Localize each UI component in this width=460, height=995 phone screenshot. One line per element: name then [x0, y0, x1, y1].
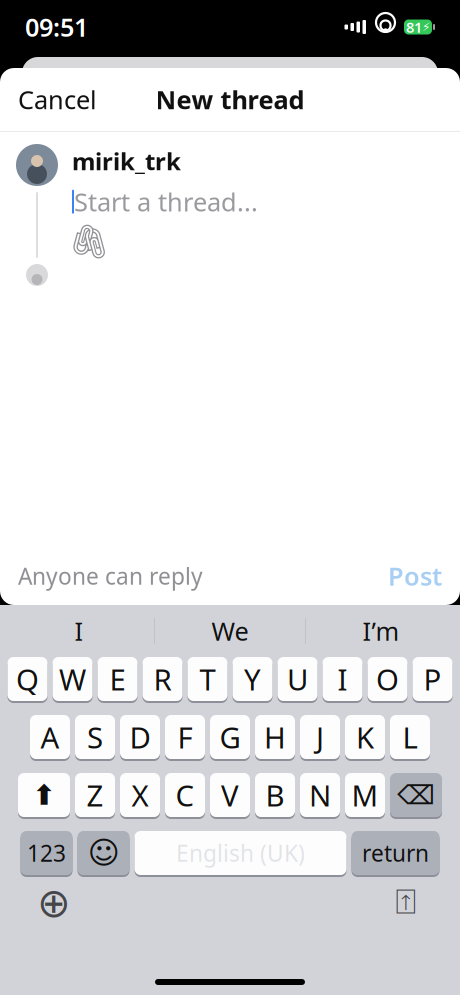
staticText: Y: [244, 659, 261, 698]
button[interactable]: M: [345, 773, 385, 819]
button[interactable]: return: [351, 831, 439, 877]
staticText: L: [402, 717, 417, 756]
staticText: Q: [16, 659, 39, 698]
button[interactable]: Cancel: [0, 73, 115, 126]
button[interactable]: Switch keyboard: [32, 883, 76, 923]
button[interactable]: P: [412, 657, 452, 703]
staticText: I: [74, 614, 83, 648]
staticText: 123: [27, 838, 66, 868]
button[interactable]: Post: [388, 549, 442, 603]
staticText: G: [219, 717, 240, 756]
button[interactable]: R: [142, 657, 182, 703]
staticText: Z: [86, 775, 103, 814]
button[interactable]: A: [30, 715, 70, 761]
staticText: return: [362, 838, 429, 868]
staticText: S: [87, 717, 103, 756]
button[interactable]: U: [277, 657, 317, 703]
staticText: W: [59, 659, 86, 698]
staticText: M: [351, 775, 378, 814]
staticText: ⚡︎: [422, 20, 430, 34]
button[interactable]: I’m: [306, 609, 456, 653]
button[interactable]: X: [120, 773, 160, 819]
button[interactable]: W: [52, 657, 92, 703]
staticText: Start a thread...: [74, 185, 258, 218]
staticText: ⬆: [32, 779, 55, 811]
staticText: O: [376, 659, 399, 698]
staticText: 81: [406, 17, 422, 37]
button[interactable]: C: [165, 773, 205, 819]
button[interactable]: Anyone can reply: [18, 551, 203, 601]
button[interactable]: 123: [20, 831, 72, 877]
staticText: N: [309, 775, 331, 814]
button[interactable]: V: [210, 773, 250, 819]
button[interactable]: B: [255, 773, 295, 819]
staticText: U: [287, 659, 308, 698]
button[interactable]: O: [367, 657, 407, 703]
staticText: 09:51: [25, 10, 88, 44]
button[interactable]: F: [165, 715, 205, 761]
button[interactable]: G: [210, 715, 250, 761]
staticText: H: [264, 717, 286, 756]
staticText: ⍐: [395, 886, 416, 920]
button[interactable]: Attach media: [72, 224, 106, 258]
button[interactable]: Delete: [390, 773, 442, 819]
button[interactable]: J: [300, 715, 340, 761]
staticText: T: [199, 659, 215, 698]
staticText: ⊕: [37, 880, 71, 926]
staticText: mirik_trk: [72, 145, 181, 177]
button[interactable]: Dictation: [384, 883, 428, 923]
button[interactable]: I: [4, 609, 154, 653]
button[interactable]: H: [255, 715, 295, 761]
staticText: V: [221, 775, 239, 814]
staticText: E: [109, 659, 125, 698]
button[interactable]: We: [155, 609, 305, 653]
staticText: We: [211, 614, 248, 648]
staticText: J: [316, 717, 324, 756]
staticText: Post: [388, 559, 442, 593]
staticText: 🖇: [68, 222, 110, 261]
staticText: ☺: [87, 836, 119, 870]
staticText: Anyone can reply: [18, 561, 203, 591]
button[interactable]: S: [75, 715, 115, 761]
staticText: A: [40, 717, 59, 756]
staticText: X: [131, 775, 148, 814]
staticText: English (UK): [176, 838, 305, 868]
button[interactable]: Shift: [18, 773, 70, 819]
staticText: New thread: [155, 83, 304, 116]
button[interactable]: I: [322, 657, 362, 703]
button[interactable]: English (UK): [134, 831, 346, 877]
button[interactable]: K: [345, 715, 385, 761]
button[interactable]: Q: [7, 657, 47, 703]
staticText: I’m: [362, 614, 399, 648]
button[interactable]: D: [120, 715, 160, 761]
button[interactable]: Emoji: [77, 831, 129, 877]
staticText: Cancel: [18, 83, 97, 116]
button[interactable]: E: [97, 657, 137, 703]
staticText: K: [356, 717, 374, 756]
button[interactable]: Z: [75, 773, 115, 819]
staticText: P: [423, 659, 441, 698]
button[interactable]: L: [390, 715, 430, 761]
button[interactable]: N: [300, 773, 340, 819]
staticText: F: [177, 717, 192, 756]
button[interactable]: T: [187, 657, 227, 703]
staticText: R: [153, 659, 171, 698]
staticText: D: [129, 717, 150, 756]
staticText: ⌫: [397, 780, 435, 810]
staticText: I: [337, 659, 347, 698]
staticText: B: [265, 775, 284, 814]
button[interactable]: Y: [232, 657, 272, 703]
staticText: C: [175, 775, 194, 814]
